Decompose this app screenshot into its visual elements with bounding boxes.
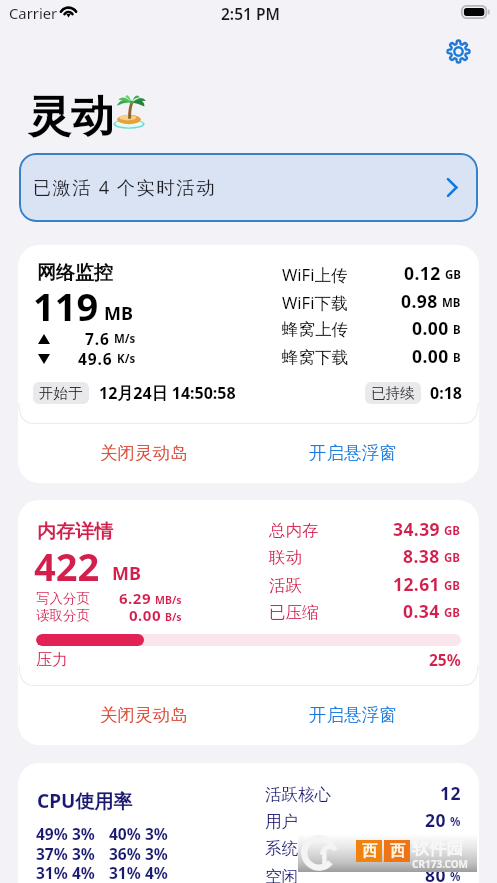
staticText: 关闭灵动岛 [100,704,188,726]
staticText: MB [104,301,133,326]
staticText: 49.6 [78,348,113,369]
staticText: 20 [425,808,446,832]
staticText: GB [444,578,460,594]
staticText: 0:18 [430,382,462,404]
staticText: 西 [390,842,405,861]
staticText: 0.00 [129,605,161,625]
staticText: 0 [435,835,446,859]
button[interactable]: 已激活 4 个实时活动 [19,153,478,222]
staticText: 3% [145,843,168,863]
staticText: CR173.COM [412,857,469,871]
staticText: 12.61 [393,572,440,596]
staticText: 总内存 [269,520,319,541]
staticText: 31% [109,862,145,882]
staticText: GB [444,550,460,566]
staticText: 开启悬浮窗 [309,442,397,464]
staticText: 已激活 4 个实时活动 [33,175,216,200]
staticText: 31% [36,862,72,882]
staticText: GB [444,605,460,621]
button[interactable]: 关闭灵动岛 [40,423,248,483]
staticText: 活跃 [269,575,302,596]
staticText: 活跃核心 [265,784,331,805]
staticText: 3% [72,843,109,863]
staticText: 34.39 [393,517,440,541]
staticText: 8.38 [403,544,440,568]
staticText: 40% [109,823,145,843]
button[interactable]: 开启悬浮窗 [248,423,457,483]
staticText: 已压缩 [269,602,319,623]
staticText: 系统 [265,838,298,859]
staticText: 0.00 [412,344,449,368]
staticText: B [453,322,461,338]
staticText: MB [442,295,461,311]
button[interactable]: Settings [445,38,471,64]
staticText: 3% [145,823,168,843]
staticText: 25% [429,649,461,670]
staticText: 软件园 [412,838,463,859]
staticText: B/s [165,610,182,624]
staticText: 0.00 [412,316,449,340]
staticText: % [450,814,461,830]
staticText: 80 [425,863,446,883]
staticText: WiFi上传 [282,263,348,286]
staticText: WiFi下载 [282,291,348,314]
staticText: MB [112,561,141,586]
staticText: 空闲 [265,866,298,883]
staticText: 119 [33,280,99,332]
staticText: 联动 [269,547,302,568]
button[interactable]: 开启悬浮窗 [248,685,457,745]
staticText: 0.98 [401,289,438,313]
staticText: 0.34 [403,599,440,623]
staticText: B [453,350,461,366]
staticText: M/s [114,331,136,347]
staticText: 用户 [265,811,298,832]
staticText: CPU使用率 [37,788,133,812]
staticText: K/s [117,351,136,367]
staticText: 4% [72,862,109,882]
staticText: 6.29 [119,588,151,608]
staticText: 12 [440,781,461,805]
staticText: Carrier [9,3,58,23]
staticText: 3% [72,823,109,843]
staticText: 网络监控 [37,261,113,285]
staticText: GB [445,267,461,283]
staticText: 蜂窝下载 [282,347,348,368]
staticText: 37% [36,843,72,863]
staticText: 4% [145,862,168,882]
staticText: 422 [34,540,100,592]
staticText: 内存详情 [37,520,113,544]
staticText: 12月24日 14:50:58 [99,382,236,404]
staticText: MB/s [155,593,182,607]
staticText: % [450,841,461,857]
staticText: 已持续 [371,384,415,402]
staticText: 7.6 [85,328,110,349]
staticText: % [450,869,461,883]
staticText: 49% [36,823,72,843]
staticText: GB [444,523,460,539]
staticText: 开始于 [39,384,83,402]
staticText: 压力 [36,650,68,670]
staticText: 读取分页 [36,607,90,624]
staticText: 关闭灵动岛 [100,442,188,464]
button[interactable]: 关闭灵动岛 [40,685,248,745]
staticText: 蜂窝上传 [282,319,348,340]
staticText: 写入分页 [36,590,90,607]
staticText: 灵动 [28,90,114,142]
staticText: 开启悬浮窗 [309,704,397,726]
staticText: 0.12 [404,261,441,285]
staticText: 36% [109,843,145,863]
staticText: 西 [362,842,377,861]
staticText: 2:51 PM [221,3,280,24]
